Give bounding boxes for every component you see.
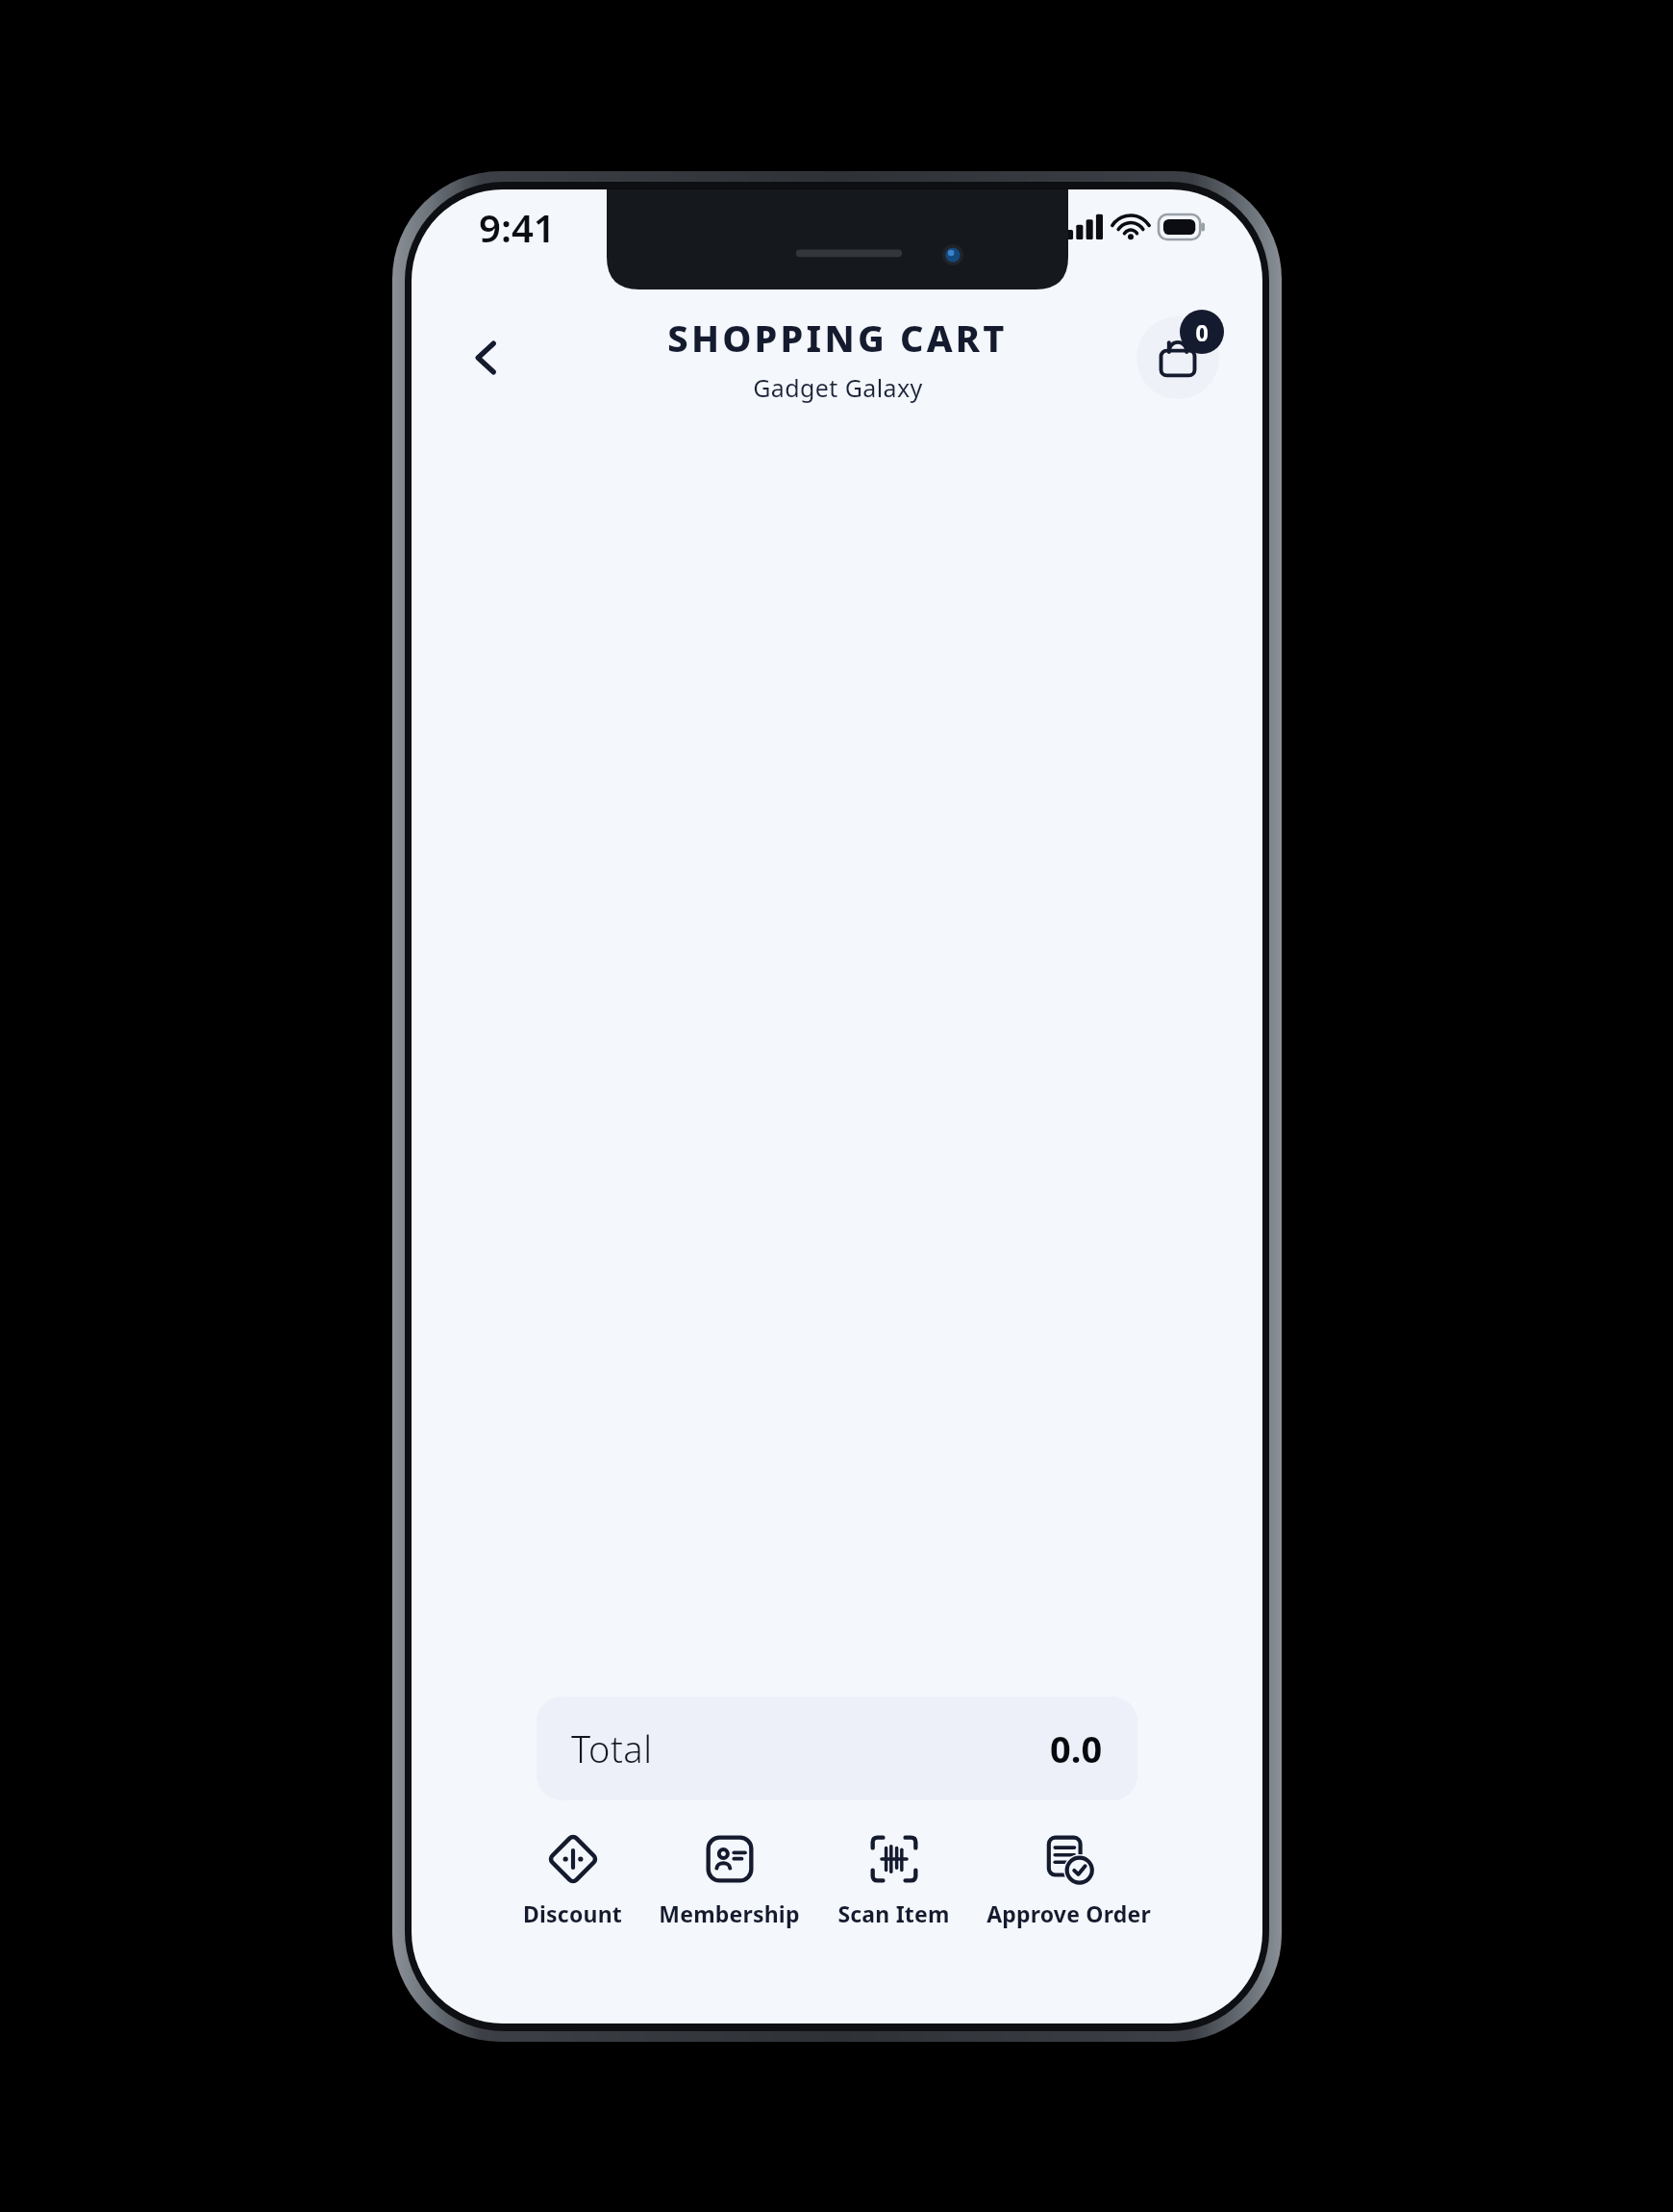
- button[interactable]: Shopping bag, 0 items: [1136, 316, 1219, 399]
- button[interactable]: Membership: [651, 1827, 808, 1932]
- button[interactable]: Approve Order: [979, 1827, 1159, 1932]
- staticText: Gadget Galaxy: [753, 371, 923, 404]
- staticText: SHOPPING CART: [667, 313, 1008, 363]
- staticText: Membership: [659, 1898, 800, 1928]
- staticText: Discount: [523, 1898, 622, 1928]
- staticText: Total: [571, 1723, 653, 1773]
- button[interactable]: Total: [537, 1697, 1137, 1800]
- button[interactable]: Discount: [515, 1827, 630, 1932]
- button[interactable]: Back: [452, 323, 521, 392]
- staticText: Scan Item: [837, 1898, 950, 1928]
- staticText: 0.0: [1050, 1723, 1103, 1773]
- button[interactable]: Scan Item: [830, 1827, 958, 1932]
- staticText: 9:41: [479, 201, 556, 253]
- staticText: 0: [1195, 317, 1209, 347]
- staticText: Approve Order: [986, 1898, 1151, 1928]
